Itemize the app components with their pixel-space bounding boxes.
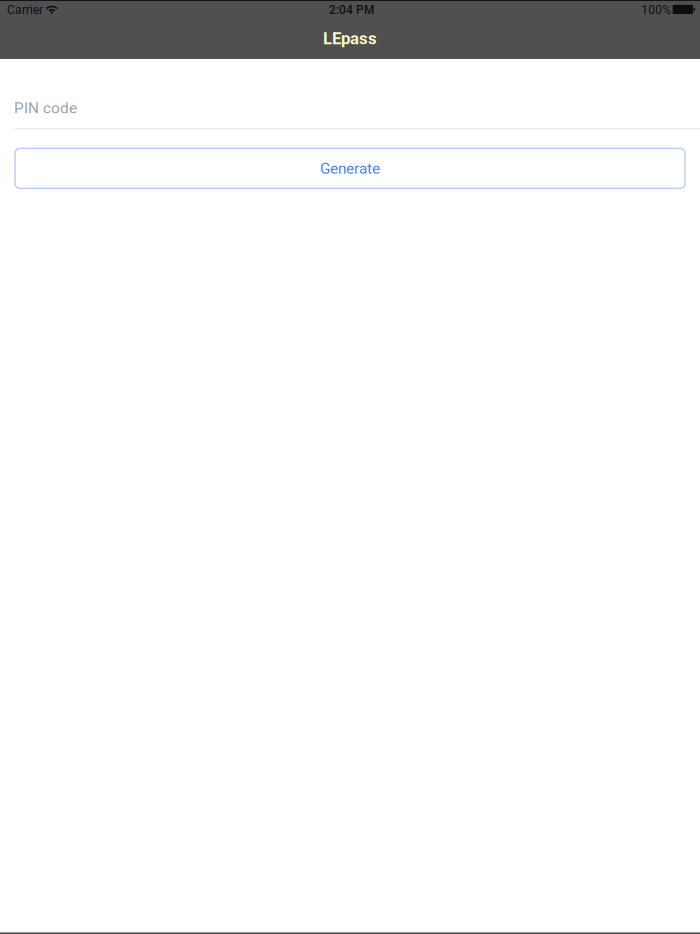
staticText: Carrier <box>7 3 43 17</box>
staticText: Generate <box>320 159 380 177</box>
staticText: PIN code <box>14 99 77 117</box>
staticText: 2:04 PM <box>329 3 374 17</box>
button[interactable]: Generate <box>15 148 685 188</box>
button[interactable]: PIN code <box>0 88 700 129</box>
staticText: 100% <box>641 3 671 17</box>
staticText: LEpass <box>323 29 377 48</box>
